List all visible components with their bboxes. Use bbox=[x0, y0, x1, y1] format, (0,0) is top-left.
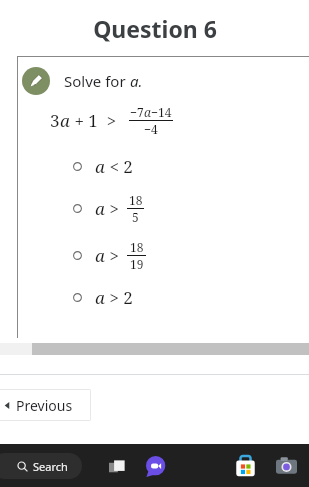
staticText: 18 bbox=[130, 239, 144, 255]
staticText: −4 bbox=[144, 121, 158, 137]
staticText: 19 bbox=[130, 256, 144, 272]
button[interactable]: a bbox=[17, 286, 309, 309]
staticText: a bbox=[95, 244, 105, 267]
staticText: −14 bbox=[151, 104, 172, 120]
button[interactable]: a bbox=[17, 239, 309, 272]
staticText: Search bbox=[33, 459, 68, 474]
staticText: a bbox=[60, 109, 70, 132]
staticText: > bbox=[105, 197, 124, 220]
staticText: < 2 bbox=[105, 155, 133, 178]
button[interactable]: Meetings bbox=[142, 452, 170, 480]
staticText: Question 6 bbox=[93, 13, 217, 44]
staticText: a. bbox=[130, 71, 143, 91]
staticText: Solve for bbox=[64, 71, 130, 91]
button[interactable]: a bbox=[17, 155, 309, 178]
button[interactable]: Microsoft Store bbox=[231, 452, 259, 480]
staticText: Previous bbox=[16, 396, 73, 415]
staticText: > 2 bbox=[105, 286, 133, 309]
button[interactable]: Task view bbox=[104, 453, 130, 479]
staticText: 3 bbox=[50, 109, 60, 132]
staticText: a bbox=[95, 197, 105, 220]
staticText: + 1 > bbox=[70, 109, 126, 132]
button[interactable]: a bbox=[17, 192, 309, 225]
button[interactable]: Search bbox=[0, 453, 82, 479]
button[interactable]: Edit bbox=[22, 67, 50, 95]
staticText: 5 bbox=[132, 209, 139, 225]
staticText: a bbox=[144, 104, 151, 120]
button[interactable]: Camera bbox=[272, 452, 300, 480]
staticText: −7 bbox=[130, 104, 144, 120]
staticText: a bbox=[95, 286, 105, 309]
button[interactable]: Previous bbox=[0, 389, 91, 421]
staticText: > bbox=[105, 244, 124, 267]
staticText: a bbox=[95, 155, 105, 178]
staticText: 18 bbox=[129, 192, 143, 208]
